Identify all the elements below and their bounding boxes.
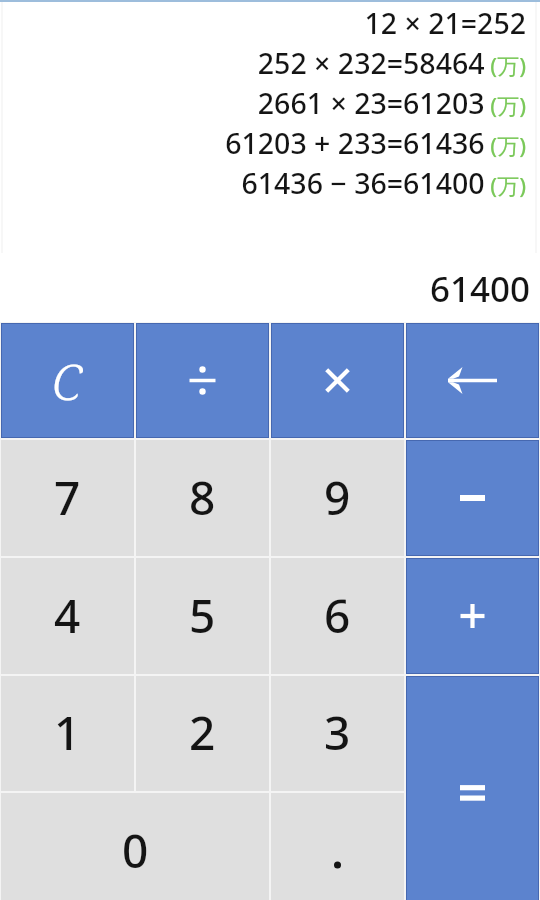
- staticText: 1: [54, 701, 81, 764]
- button[interactable]: 6: [271, 558, 404, 674]
- button[interactable]: 5: [136, 558, 269, 674]
- staticText: 9: [324, 466, 351, 529]
- staticText: 0: [122, 819, 149, 882]
- staticText: 6: [324, 584, 351, 647]
- button[interactable]: Backspace: [406, 323, 539, 438]
- button[interactable]: Plus: [406, 558, 539, 674]
- staticText: 3: [324, 701, 351, 764]
- button[interactable]: Decimal point: [271, 793, 404, 900]
- button[interactable]: Equals: [406, 676, 539, 900]
- staticText: C: [52, 347, 83, 415]
- button[interactable]: Clear: [1, 323, 134, 438]
- button[interactable]: Multiply: [271, 323, 404, 438]
- staticText: 61203 + 233=61436 (万): [0, 124, 526, 163]
- button[interactable]: 9: [271, 440, 404, 556]
- button[interactable]: 8: [136, 440, 269, 556]
- staticText: 61436 − 36=61400 (万): [0, 164, 526, 203]
- staticText: 12 × 21=252: [0, 4, 526, 43]
- staticText: 8: [189, 466, 216, 529]
- button[interactable]: 0: [1, 793, 269, 900]
- button[interactable]: Divide: [136, 323, 269, 438]
- button[interactable]: 7: [1, 440, 134, 556]
- button[interactable]: 1: [1, 676, 134, 791]
- staticText: 5: [189, 584, 216, 647]
- staticText: 61400: [430, 265, 531, 313]
- button[interactable]: 4: [1, 558, 134, 674]
- staticText: 2: [189, 701, 216, 764]
- staticText: 7: [54, 466, 81, 529]
- staticText: 2661 × 23=61203 (万): [0, 84, 526, 123]
- staticText: 4: [54, 584, 81, 647]
- button[interactable]: 2: [136, 676, 269, 791]
- button[interactable]: 3: [271, 676, 404, 791]
- staticText: 252 × 232=58464 (万): [0, 44, 526, 83]
- button[interactable]: Minus: [406, 440, 539, 556]
